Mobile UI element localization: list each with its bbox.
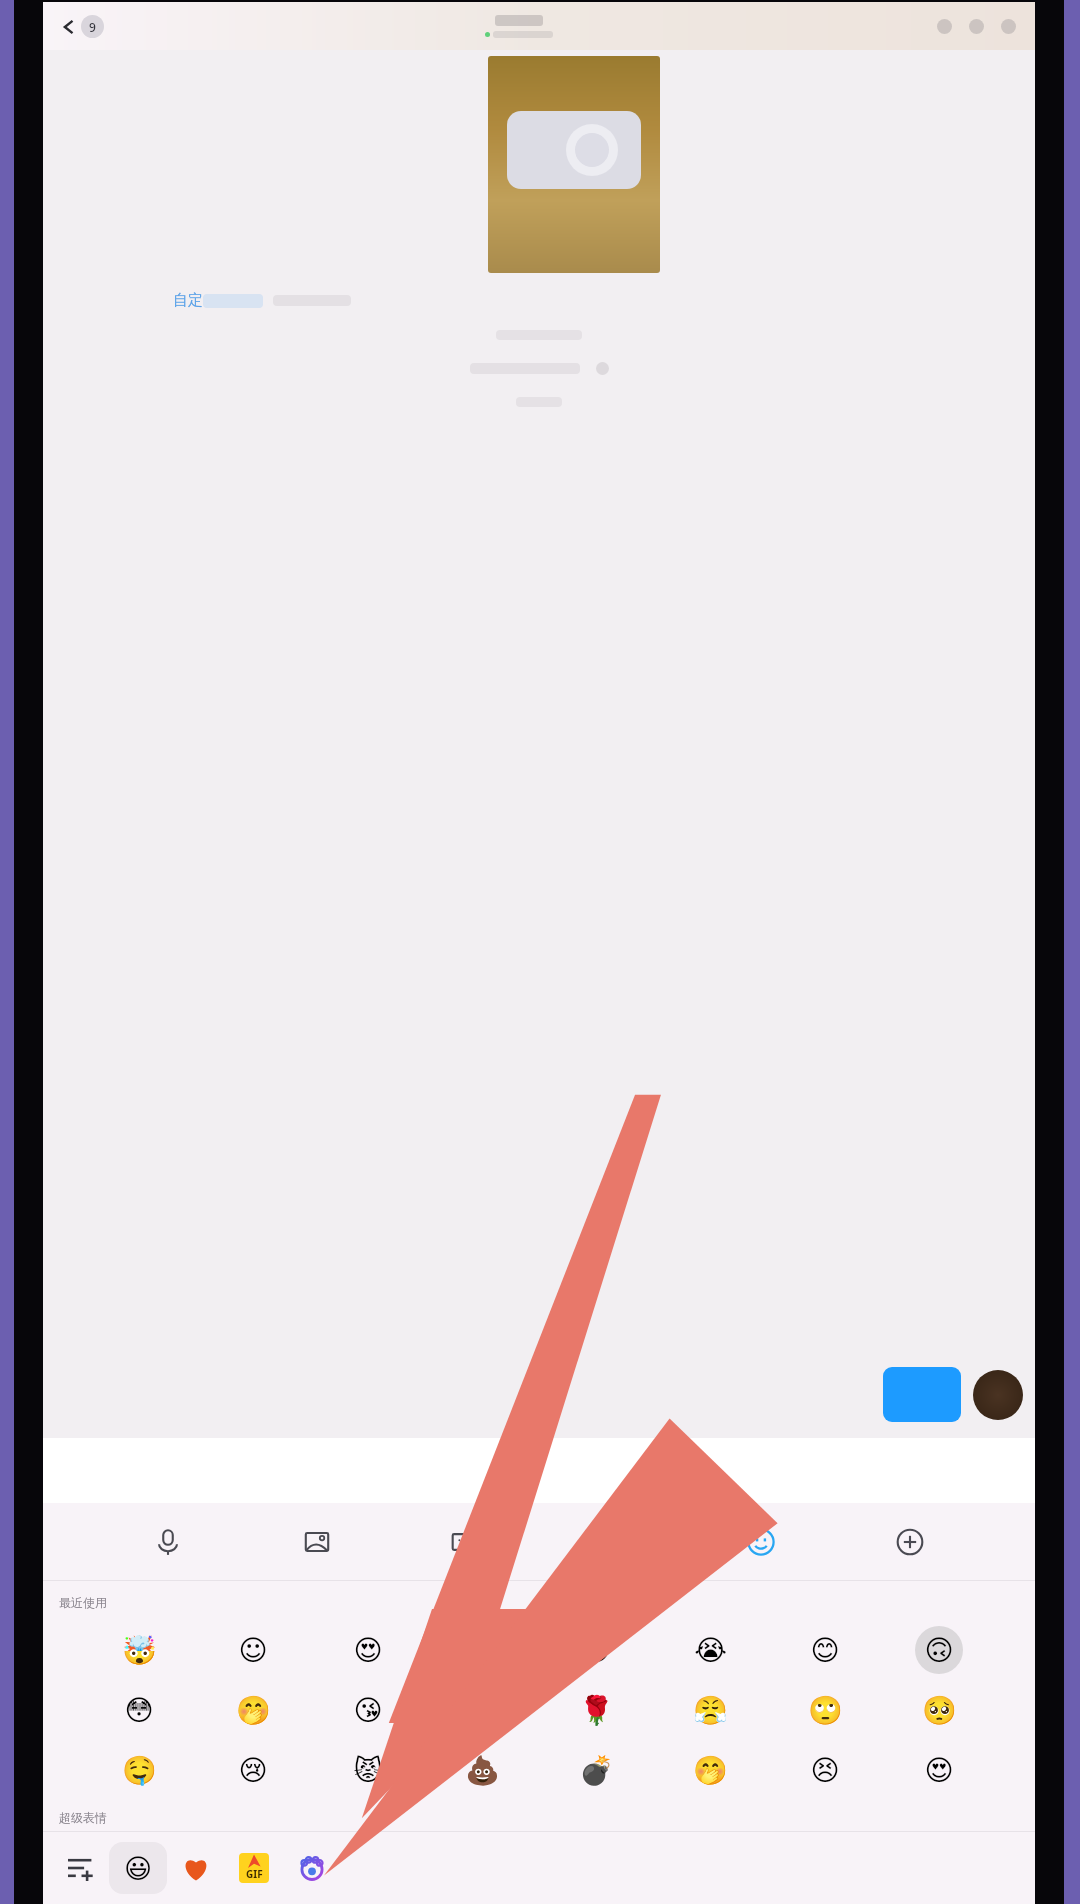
staticText: 😊 bbox=[810, 1634, 840, 1667]
button[interactable]: Back, 9 unread bbox=[57, 11, 108, 42]
staticText: 🤭 bbox=[236, 1694, 271, 1727]
staticText: 🌹 bbox=[579, 1694, 614, 1727]
button[interactable]: 🌹 bbox=[572, 1686, 620, 1734]
staticText: 😃 bbox=[124, 1853, 153, 1884]
button[interactable]: 😔 bbox=[572, 1626, 620, 1674]
button[interactable]: Voice call bbox=[963, 13, 989, 39]
button[interactable]: Sticker pack bbox=[283, 1839, 341, 1897]
staticText: 🤯 bbox=[122, 1634, 157, 1667]
staticText: 😤 bbox=[693, 1694, 728, 1727]
button[interactable]: Video call bbox=[931, 13, 957, 39]
staticText: 最近使用 bbox=[59, 1595, 107, 1610]
button[interactable]: 🤭 bbox=[686, 1746, 734, 1794]
button[interactable]: Favorite stickers bbox=[167, 1839, 225, 1897]
button[interactable]: Photo message bbox=[488, 56, 660, 273]
button[interactable]: 😳 bbox=[115, 1686, 163, 1734]
button[interactable]: 😣 bbox=[801, 1746, 849, 1794]
button[interactable]: Emoji tab bbox=[109, 1842, 167, 1894]
button[interactable]: Camera bbox=[442, 1519, 488, 1565]
button[interactable]: More bbox=[995, 13, 1021, 39]
button[interactable]: 💣 bbox=[572, 1746, 620, 1794]
staticText: 😳 bbox=[124, 1694, 154, 1727]
button[interactable]: 😍 bbox=[344, 1626, 392, 1674]
button[interactable]: 🤭 bbox=[229, 1686, 277, 1734]
button[interactable]: 😤 bbox=[686, 1686, 734, 1734]
staticText: 超级表情 bbox=[59, 1810, 107, 1825]
button[interactable]: 😢 bbox=[229, 1746, 277, 1794]
button[interactable]: 🙄 bbox=[801, 1686, 849, 1734]
button[interactable]: Manage stickers bbox=[53, 1840, 109, 1896]
button[interactable]: Emoji bbox=[738, 1519, 784, 1565]
staticText: 🙄 bbox=[808, 1694, 843, 1727]
staticText: 自定 bbox=[173, 291, 203, 310]
staticText: 9 bbox=[89, 19, 96, 35]
staticText: 🤤 bbox=[122, 1754, 157, 1787]
button[interactable]: Sent message bbox=[883, 1367, 961, 1422]
button[interactable]: 💩 bbox=[458, 1746, 506, 1794]
button[interactable]: 🤯 bbox=[115, 1626, 163, 1674]
staticText: 😔 bbox=[581, 1634, 611, 1667]
button[interactable]: 😭 bbox=[686, 1626, 734, 1674]
staticText: GIF bbox=[246, 1867, 263, 1881]
staticText: 😾 bbox=[353, 1754, 383, 1787]
button[interactable]: 😊 bbox=[801, 1626, 849, 1674]
button[interactable]: 😾 bbox=[344, 1746, 392, 1794]
button[interactable]: GIF bbox=[225, 1839, 283, 1897]
button[interactable]: 🥺 bbox=[915, 1686, 963, 1734]
button[interactable]: 😍 bbox=[915, 1746, 963, 1794]
staticText: 😍 bbox=[924, 1754, 954, 1787]
staticText: 😭 bbox=[694, 1634, 727, 1667]
staticText: 😢 bbox=[238, 1754, 268, 1787]
staticText: 💣 bbox=[579, 1754, 614, 1787]
button[interactable]: 🙃 bbox=[915, 1626, 963, 1674]
button[interactable]: Favorites bbox=[590, 1519, 636, 1565]
button[interactable]: ☺️ bbox=[229, 1626, 277, 1674]
button[interactable]: Avatar bbox=[973, 1370, 1023, 1420]
staticText: 🙃 bbox=[924, 1634, 954, 1667]
button[interactable]: 🤤 bbox=[115, 1746, 163, 1794]
button[interactable]: Photos bbox=[294, 1519, 340, 1565]
staticText: 💩 bbox=[465, 1754, 500, 1787]
button[interactable]: Voice input bbox=[145, 1519, 191, 1565]
staticText: 🥺 bbox=[922, 1694, 957, 1727]
staticText: ☺️ bbox=[238, 1634, 268, 1667]
staticText: 😍 bbox=[353, 1634, 383, 1667]
staticText: 😘 bbox=[353, 1694, 383, 1727]
staticText: 🤭 bbox=[693, 1754, 728, 1787]
button[interactable]: More bbox=[887, 1519, 933, 1565]
staticText: 😣 bbox=[810, 1754, 840, 1787]
button[interactable]: 😘 bbox=[344, 1686, 392, 1734]
